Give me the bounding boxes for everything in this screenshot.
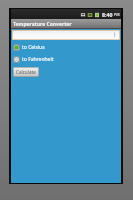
button[interactable]: Calculate bbox=[13, 67, 39, 77]
other: to Celsius bbox=[13, 44, 20, 51]
staticText: PM bbox=[114, 12, 120, 17]
button[interactable]: to Fahrenheit bbox=[11, 55, 121, 64]
staticText: to Celsius bbox=[22, 44, 45, 51]
button[interactable] bbox=[12, 30, 120, 40]
other: to Fahrenheit bbox=[13, 56, 20, 63]
button[interactable]: to Celsius bbox=[11, 43, 121, 52]
staticText: Temperature Converter bbox=[13, 21, 72, 28]
staticText: to Fahrenheit bbox=[22, 56, 54, 63]
staticText: Calculate bbox=[16, 69, 36, 75]
staticText: 8:40 bbox=[102, 11, 113, 18]
